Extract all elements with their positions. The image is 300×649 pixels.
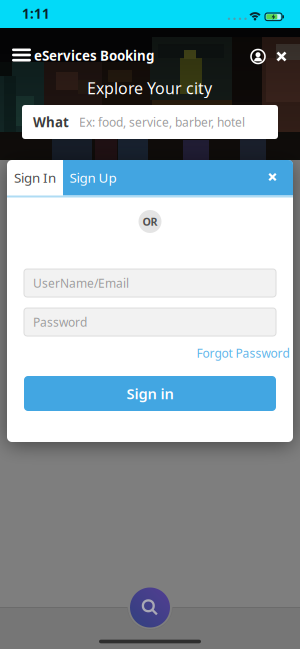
button[interactable]: UserName/Email — [24, 269, 276, 297]
button[interactable]: Forgot Password — [193, 342, 292, 364]
staticText: Explore Your city — [87, 77, 212, 99]
staticText: OR — [142, 214, 157, 229]
staticText: Forgot Password — [196, 345, 289, 361]
staticText: Sign Up — [69, 169, 116, 186]
staticText: eServices Booking — [34, 47, 154, 64]
button[interactable]: What — [22, 105, 278, 139]
staticText: UserName/Email — [33, 275, 129, 291]
staticText: Sign in — [126, 384, 173, 403]
button[interactable]: Menu — [8, 44, 35, 65]
button[interactable]: Account — [249, 47, 267, 65]
staticText: Sign In — [14, 169, 56, 186]
button[interactable]: Sign In — [7, 160, 63, 195]
staticText: 1:11 — [22, 5, 50, 22]
button[interactable]: Close — [274, 49, 288, 63]
button[interactable]: Search — [130, 588, 169, 627]
staticText: What — [33, 113, 69, 131]
button[interactable]: Sign Up — [65, 160, 121, 195]
button[interactable]: Password — [24, 308, 276, 336]
staticText: Password — [33, 314, 87, 330]
staticText: Ex: food, service, barber, hotel — [79, 114, 245, 130]
button[interactable]: Sign in — [24, 376, 276, 411]
button[interactable]: Close — [266, 171, 279, 183]
